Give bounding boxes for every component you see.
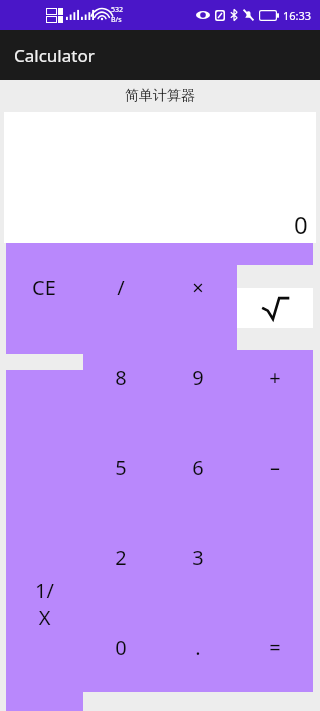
staticText: . [195, 634, 201, 661]
staticText: 532 [111, 5, 124, 15]
staticText: 0 [115, 634, 127, 661]
staticText: 简单计算器 [125, 87, 195, 105]
button[interactable]: 1/ X [6, 370, 83, 711]
button[interactable]: + [236, 332, 313, 422]
button[interactable]: 2 [82, 512, 159, 602]
button[interactable]: 6 [159, 422, 236, 512]
button[interactable]: 5 [82, 422, 159, 512]
button[interactable]: C [236, 243, 313, 332]
staticText: 7 [38, 364, 50, 391]
button[interactable]: Square root [237, 288, 313, 328]
button[interactable]: Calculator [0, 30, 320, 80]
staticText: 2 [115, 544, 127, 571]
staticText: B/s [111, 15, 122, 25]
button[interactable]: = [236, 602, 313, 692]
button[interactable]: 7 [6, 332, 82, 422]
button[interactable]: 9 [159, 332, 236, 422]
staticText: 3 [192, 544, 204, 571]
button[interactable]: CE [6, 243, 82, 332]
staticText: × [192, 274, 204, 301]
button[interactable]: 0 [82, 602, 159, 692]
button[interactable]: . [159, 602, 236, 692]
staticText: = [269, 634, 281, 661]
button[interactable]: × [159, 243, 236, 332]
staticText: 0 [294, 208, 308, 241]
button[interactable]: / [82, 243, 159, 332]
staticText: Calculator [14, 44, 95, 67]
staticText: + [269, 364, 281, 391]
staticText: 6 [192, 454, 204, 481]
button[interactable]: 8 [82, 332, 159, 422]
staticText: / [117, 274, 125, 301]
button[interactable]: – [236, 422, 313, 512]
staticText: – [270, 454, 280, 481]
staticText: 9 [192, 364, 204, 391]
staticText: 8 [115, 364, 127, 391]
staticText: 1/ X [35, 577, 54, 631]
button[interactable]: 3 [159, 512, 236, 602]
staticText: 5 [115, 454, 127, 481]
button[interactable]: 1 [6, 512, 82, 602]
button[interactable] [6, 602, 82, 692]
staticText: C [268, 274, 281, 301]
staticText: CE [32, 274, 56, 301]
staticText: 16:33 [283, 8, 312, 23]
